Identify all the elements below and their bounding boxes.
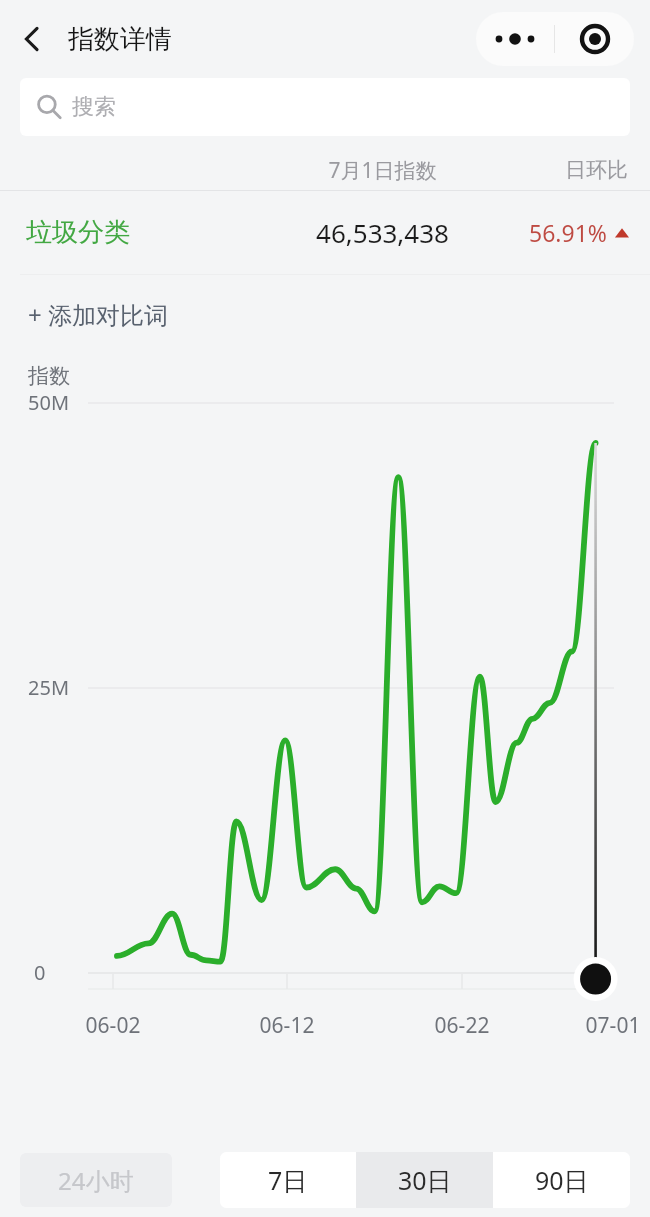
staticText: 06-12 [242, 1011, 332, 1040]
staticText: 指数 [28, 363, 70, 389]
staticText: 56.91% [529, 217, 607, 248]
button[interactable]: More options [476, 12, 554, 66]
button[interactable]: Back [6, 13, 58, 65]
button[interactable]: 90日 [493, 1152, 630, 1208]
button[interactable]: 7日 [220, 1152, 356, 1208]
staticText: 07-01 [568, 1011, 650, 1040]
staticText: 25M [28, 674, 70, 701]
staticText: 06-02 [68, 1011, 158, 1040]
staticText: 46,533,438 [275, 215, 490, 250]
staticText: 24小时 [58, 1164, 134, 1197]
button[interactable]: 30日 [356, 1152, 493, 1208]
button[interactable]: 24小时 [20, 1153, 172, 1207]
staticText: 50M [28, 389, 70, 416]
staticText: + 添加对比词 [28, 298, 168, 331]
staticText: 90日 [535, 1163, 589, 1197]
button[interactable]: 搜索 [20, 78, 630, 136]
staticText: 日环比 [490, 157, 628, 183]
staticText: 垃圾分类 [26, 216, 130, 249]
staticText: 30日 [398, 1163, 452, 1197]
staticText: 06-22 [417, 1011, 507, 1040]
staticText: 搜索 [72, 93, 116, 121]
staticText: 0 [34, 959, 46, 986]
staticText: 7日 [268, 1163, 308, 1197]
button[interactable]: 垃圾分类 [0, 191, 650, 274]
staticText: 7月1日指数 [275, 156, 490, 185]
button[interactable]: Close mini program [555, 12, 634, 66]
staticText: 指数详情 [68, 23, 172, 56]
button[interactable]: + 添加对比词 [0, 275, 650, 353]
